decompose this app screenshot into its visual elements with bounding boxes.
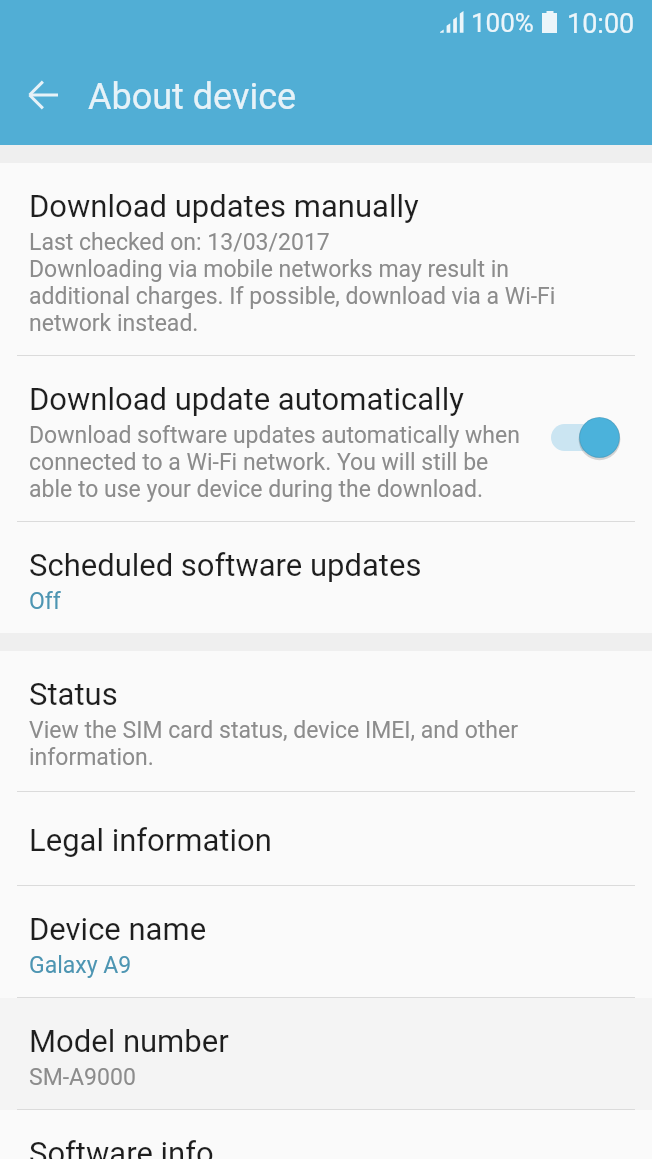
- staticText: Download software updates automatically …: [29, 422, 520, 503]
- button[interactable]: Status: [0, 651, 652, 792]
- button[interactable]: Legal information: [0, 792, 652, 886]
- button[interactable]: Model number: [0, 998, 652, 1110]
- staticText: Download update automatically: [29, 381, 464, 417]
- button[interactable]: Device name: [0, 886, 652, 998]
- staticText: Software info: [29, 1135, 214, 1159]
- staticText: Last checked on: 13/03/2017 Downloading …: [29, 229, 556, 337]
- staticText: View the SIM card status, device IMEI, a…: [29, 717, 519, 771]
- button[interactable]: Software info: [0, 1110, 652, 1159]
- staticText: Device name: [29, 911, 207, 947]
- staticText: SM-A9000: [29, 1064, 136, 1091]
- staticText: 10:00: [567, 8, 635, 40]
- staticText: Download updates manually: [29, 188, 419, 224]
- button[interactable]: Download update automatically toggle: [551, 397, 622, 477]
- button[interactable]: Download update automatically: [0, 356, 652, 522]
- staticText: Model number: [29, 1023, 229, 1059]
- staticText: Off: [29, 588, 61, 615]
- staticText: Status: [29, 676, 118, 712]
- staticText: 100%: [471, 8, 534, 38]
- staticText: Legal information: [29, 822, 272, 858]
- staticText: Scheduled software updates: [29, 547, 422, 583]
- button[interactable]: Download updates manually: [0, 163, 652, 356]
- button[interactable]: Navigate up: [8, 59, 80, 131]
- staticText: Galaxy A9: [29, 952, 132, 979]
- button[interactable]: Scheduled software updates: [0, 522, 652, 633]
- staticText: About device: [88, 76, 297, 118]
